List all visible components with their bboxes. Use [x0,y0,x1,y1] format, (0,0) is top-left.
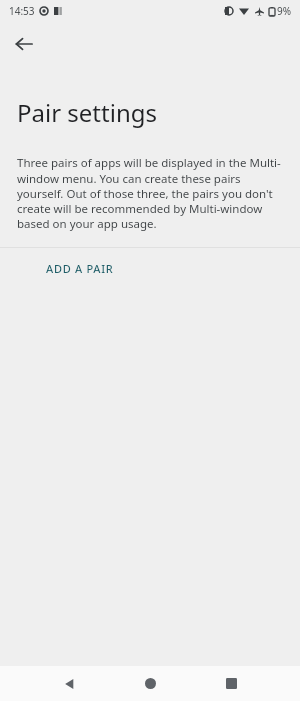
button[interactable]: Recent apps [209,666,253,701]
staticText: 9% [277,4,292,18]
button[interactable]: Back [47,666,91,701]
button[interactable]: ADD A PAIR [36,255,124,282]
staticText: ADD A PAIR [46,261,114,276]
staticText: 14:53 [9,4,35,18]
staticText: Three pairs of apps will be displayed in… [17,155,284,231]
staticText: Pair settings [17,96,157,129]
button[interactable]: Home [128,666,172,701]
button[interactable]: Back [6,26,42,62]
